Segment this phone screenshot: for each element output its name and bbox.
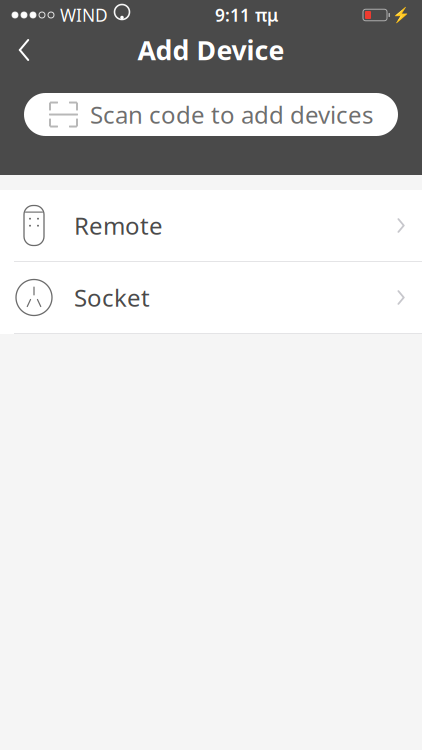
staticText: WIND bbox=[60, 3, 108, 26]
staticText: Remote bbox=[74, 210, 163, 241]
button[interactable]: Back bbox=[0, 28, 48, 72]
button[interactable]: Remote bbox=[0, 190, 422, 262]
staticText: 9:11 πμ bbox=[215, 3, 278, 26]
staticText: Add Device bbox=[137, 32, 284, 68]
staticText: Scan code to add devices bbox=[90, 99, 373, 130]
staticText: Socket bbox=[74, 282, 150, 313]
staticText: ⚡ bbox=[392, 7, 410, 23]
button[interactable]: Socket bbox=[0, 262, 422, 334]
button[interactable]: Scan code to add devices bbox=[24, 93, 398, 136]
